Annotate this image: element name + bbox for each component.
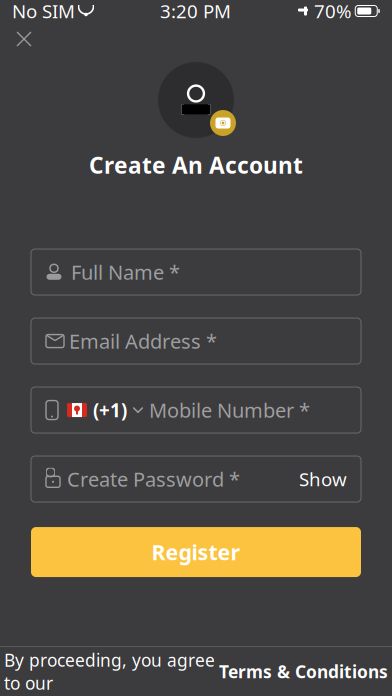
staticText: By proceeding, you agree to our	[4, 648, 215, 694]
staticText: Create An Account	[89, 150, 303, 180]
button[interactable]: Create Password *	[31, 456, 361, 502]
staticText: Email Address *	[69, 328, 217, 354]
button[interactable]: Full Name *	[31, 249, 361, 295]
staticText: Create Password *	[67, 466, 240, 492]
button[interactable]: Change photo	[210, 110, 236, 136]
staticText: Mobile Number *	[149, 397, 310, 423]
button[interactable]: Email Address *	[31, 318, 361, 364]
staticText: 3:20 PM	[160, 0, 231, 23]
staticText: No SIM	[12, 0, 75, 23]
button[interactable]: By proceeding, you agree to our	[0, 647, 392, 696]
staticText	[352, 4, 355, 18]
staticText: 70%	[309, 0, 352, 23]
staticText: Terms & Conditions	[219, 660, 388, 683]
staticText: (+1)	[93, 398, 127, 422]
staticText: Full Name *	[71, 259, 180, 285]
button[interactable]: Close	[2, 22, 46, 56]
staticText: Show	[299, 467, 347, 491]
staticText: Register	[151, 538, 240, 566]
button[interactable]: (+1)	[31, 387, 361, 433]
button[interactable]: Register	[31, 527, 361, 577]
